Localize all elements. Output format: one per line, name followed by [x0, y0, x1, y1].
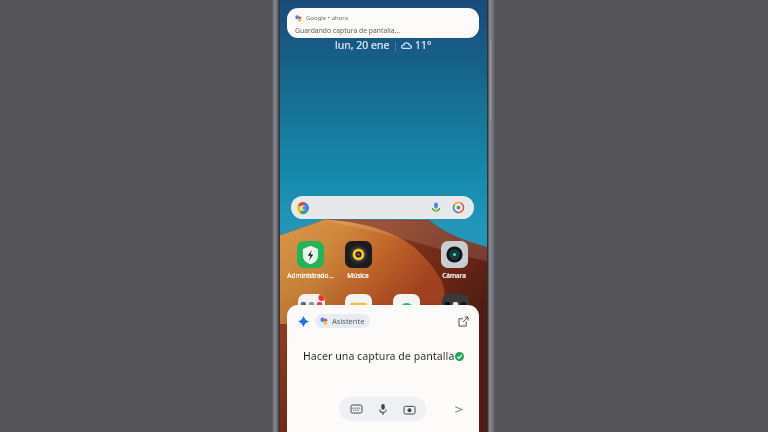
- button[interactable]: Google • ahora: [287, 8, 479, 38]
- button[interactable]: lun, 20 ene: [280, 38, 487, 52]
- staticText: Google • ahora: [306, 14, 349, 22]
- staticText: Administrado...: [287, 271, 334, 280]
- staticText: Música: [347, 271, 369, 280]
- staticText: Cámara: [442, 271, 466, 280]
- button[interactable]: Micrófono: [373, 399, 393, 419]
- button[interactable]: Teclado: [346, 399, 366, 419]
- button[interactable]: Administrado...: [286, 241, 334, 280]
- button[interactable]: [345, 294, 372, 321]
- button[interactable]: [393, 294, 420, 321]
- staticText: Guardando captura de pantalla...: [295, 26, 401, 35]
- staticText: 11°: [415, 38, 432, 52]
- button[interactable]: Abrir: [456, 314, 470, 328]
- button[interactable]: Cámara: [399, 399, 419, 419]
- button[interactable]: [291, 196, 474, 219]
- button[interactable]: [442, 294, 469, 321]
- button[interactable]: Cámara: [430, 241, 478, 280]
- staticText: Hacer una captura de pantalla: [303, 349, 455, 363]
- staticText: lun, 20 ene: [335, 38, 390, 52]
- button[interactable]: Música: [334, 241, 382, 280]
- staticText: Asistente: [332, 316, 365, 326]
- button[interactable]: Asistente: [320, 316, 365, 326]
- staticText: |: [393, 39, 398, 51]
- button[interactable]: [298, 294, 325, 321]
- button[interactable]: Enviar: [450, 401, 466, 417]
